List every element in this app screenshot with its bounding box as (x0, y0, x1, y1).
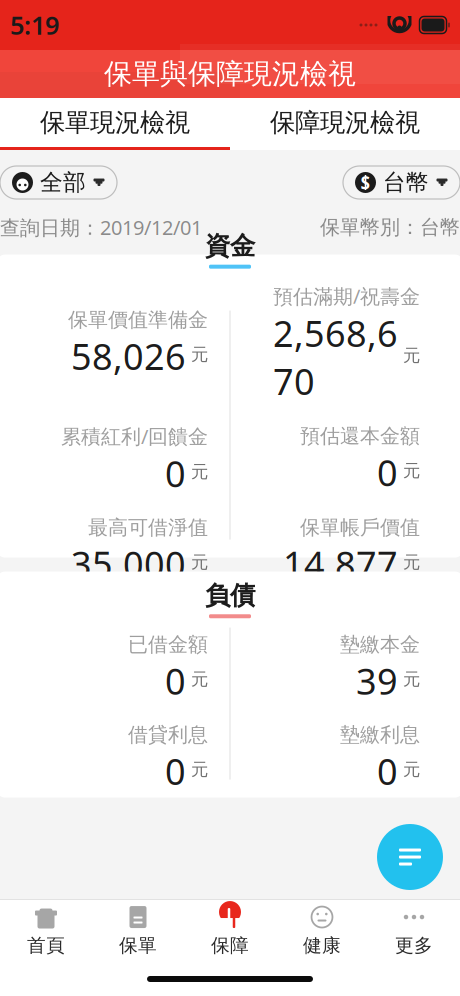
staticText: 元 (398, 759, 420, 780)
staticText: 健康 (303, 934, 341, 957)
staticText: 39 (356, 657, 398, 705)
staticText: 最高可借淨值 (88, 515, 208, 540)
staticText: 58,026 (71, 332, 186, 380)
staticText: 預估還本金額 (300, 424, 420, 448)
staticText: 保單與保障現況檢視 (104, 57, 356, 91)
staticText: 資金 (205, 230, 255, 262)
staticText: 元 (186, 551, 208, 573)
staticText: 元 (186, 461, 208, 482)
staticText: 元 (186, 669, 208, 690)
staticText: 0 (165, 449, 186, 497)
button[interactable]: 保單 (92, 903, 184, 959)
button[interactable]: 保障 (184, 903, 276, 959)
staticText: 預估滿期/祝壽金 (273, 283, 420, 309)
staticText: 保單帳戶價值 (300, 515, 420, 540)
button[interactable]: S (343, 166, 460, 199)
staticText: 元 (398, 551, 420, 573)
button[interactable]: 健康 (276, 903, 368, 959)
staticText: 更多 (395, 934, 433, 957)
staticText: 查詢日期：2019/12/01 (0, 214, 202, 241)
staticText: 保障 (211, 934, 249, 957)
button[interactable]: 首頁 (0, 903, 92, 959)
staticText: 元 (398, 669, 420, 690)
staticText: 保障現況檢視 (270, 107, 420, 138)
staticText: 0 (165, 747, 186, 795)
staticText: 2,568,670 (273, 309, 398, 405)
button[interactable]: 保單現況檢視 (0, 98, 230, 150)
staticText: 0 (165, 657, 186, 705)
staticText: 已借金額 (128, 632, 208, 657)
staticText: 累積紅利/回饋金 (61, 423, 208, 449)
staticText: 借貸利息 (128, 723, 208, 747)
button[interactable]: Menu (377, 824, 443, 890)
staticText: 元 (186, 344, 208, 365)
staticText: 保單價值準備金 (68, 308, 208, 332)
button[interactable]: 全部 (0, 166, 117, 199)
staticText: 14,877 (283, 540, 398, 588)
staticText: 負債 (205, 580, 255, 611)
staticText: 全部 (40, 169, 86, 196)
button[interactable]: 更多 (368, 903, 460, 959)
staticText: 元 (398, 345, 420, 366)
staticText: 0 (377, 747, 398, 795)
staticText: 墊繳本金 (340, 632, 420, 657)
staticText: 墊繳利息 (340, 723, 420, 747)
staticText: 元 (186, 759, 208, 780)
staticText: 保單幣別：台幣 (320, 215, 460, 240)
staticText: 保單 (119, 934, 157, 957)
staticText: 元 (398, 460, 420, 481)
staticText: 5:19 (10, 8, 59, 42)
staticText: 台幣 (383, 169, 429, 196)
staticText: 首頁 (27, 934, 65, 957)
staticText: 0 (377, 448, 398, 496)
staticText: 保單現況檢視 (40, 107, 190, 138)
staticText: S (360, 171, 370, 194)
staticText: 35,000 (71, 540, 186, 588)
button[interactable]: 保障現況檢視 (230, 98, 460, 150)
